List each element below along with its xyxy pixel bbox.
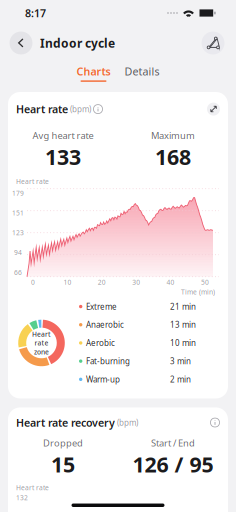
staticText: 94: [14, 248, 22, 257]
staticText: Dropped: [43, 437, 83, 449]
staticText: 133: [45, 143, 81, 171]
staticText: Anaerobic: [86, 319, 124, 330]
staticText: 123: [12, 228, 24, 237]
staticText: Heart: [32, 330, 51, 339]
staticText: rate: [34, 338, 48, 347]
staticText: 20: [98, 278, 106, 287]
staticText: 0: [31, 278, 35, 287]
staticText: (bpm): [68, 104, 91, 114]
staticText: 15: [51, 450, 75, 478]
staticText: 132: [16, 493, 28, 502]
staticText: 2 min: [170, 374, 191, 385]
staticText: Avg heart rate: [32, 129, 93, 142]
staticText: Maximum: [151, 129, 195, 142]
staticText: 8:17: [25, 6, 46, 20]
button[interactable]: Details: [122, 64, 161, 82]
staticText: 40: [167, 278, 175, 287]
staticText: 13 min: [170, 319, 196, 330]
staticText: 3 min: [170, 356, 191, 366]
staticText: Aerobic: [86, 338, 115, 348]
staticText: 66: [14, 268, 22, 277]
staticText: 10: [63, 278, 71, 287]
button[interactable]: Back: [8, 30, 34, 56]
staticText: 50: [201, 278, 209, 287]
staticText: Heart rate: [16, 177, 49, 186]
staticText: 30: [132, 278, 140, 287]
staticText: Heart rate: [16, 102, 68, 116]
staticText: Charts: [76, 64, 110, 78]
staticText: Time (min): [181, 288, 215, 296]
staticText: 151: [12, 208, 24, 217]
staticText: 168: [155, 143, 191, 171]
button[interactable]: Share: [200, 30, 226, 56]
button[interactable]: Charts: [74, 64, 112, 82]
staticText: 126 / 95: [132, 450, 213, 478]
staticText: 21 min: [170, 301, 196, 312]
staticText: Details: [124, 64, 159, 78]
staticText: Heart rate recovery: [16, 415, 115, 430]
staticText: Start / End: [151, 437, 195, 449]
button[interactable]: Expand chart: [207, 103, 220, 116]
staticText: 10 min: [170, 338, 196, 348]
staticText: zone: [34, 347, 49, 356]
staticText: Fat-burning: [86, 356, 130, 366]
staticText: (bpm): [115, 417, 138, 428]
staticText: 179: [12, 189, 24, 198]
staticText: Heart rate: [16, 483, 49, 492]
staticText: Warm-up: [86, 374, 120, 385]
staticText: Extreme: [86, 301, 117, 312]
staticText: Indoor cycle: [40, 35, 115, 51]
